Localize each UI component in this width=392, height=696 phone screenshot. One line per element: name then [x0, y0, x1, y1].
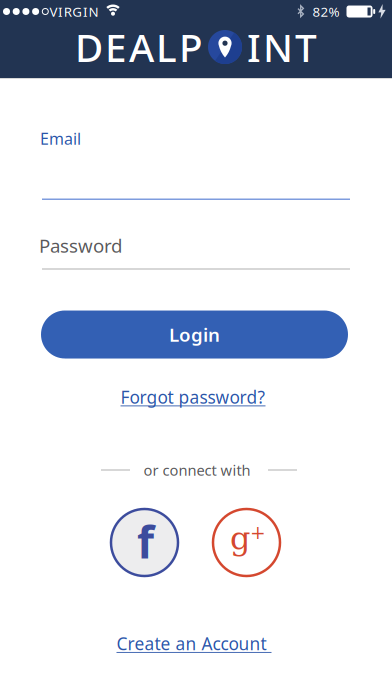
- button[interactable]: Login: [41, 310, 348, 358]
- staticText: f: [137, 512, 154, 571]
- staticText: Forgot password?: [120, 385, 265, 408]
- staticText: g: [230, 520, 250, 557]
- staticText: 82%: [312, 3, 339, 20]
- staticText: INT: [247, 21, 317, 73]
- staticText: Password: [39, 233, 122, 258]
- button[interactable]: f: [111, 509, 178, 576]
- staticText: VIRGIN: [49, 3, 98, 20]
- staticText: +: [250, 522, 266, 543]
- staticText: DEALP: [75, 21, 203, 73]
- staticText: Login: [169, 322, 220, 347]
- button[interactable]: g: [213, 509, 280, 576]
- staticText: Email: [40, 128, 81, 149]
- button[interactable]: Forgot password?: [120, 385, 265, 408]
- button[interactable]: Create an Account: [116, 632, 271, 655]
- staticText: Create an Account: [116, 632, 271, 655]
- staticText: or connect with: [143, 460, 250, 480]
